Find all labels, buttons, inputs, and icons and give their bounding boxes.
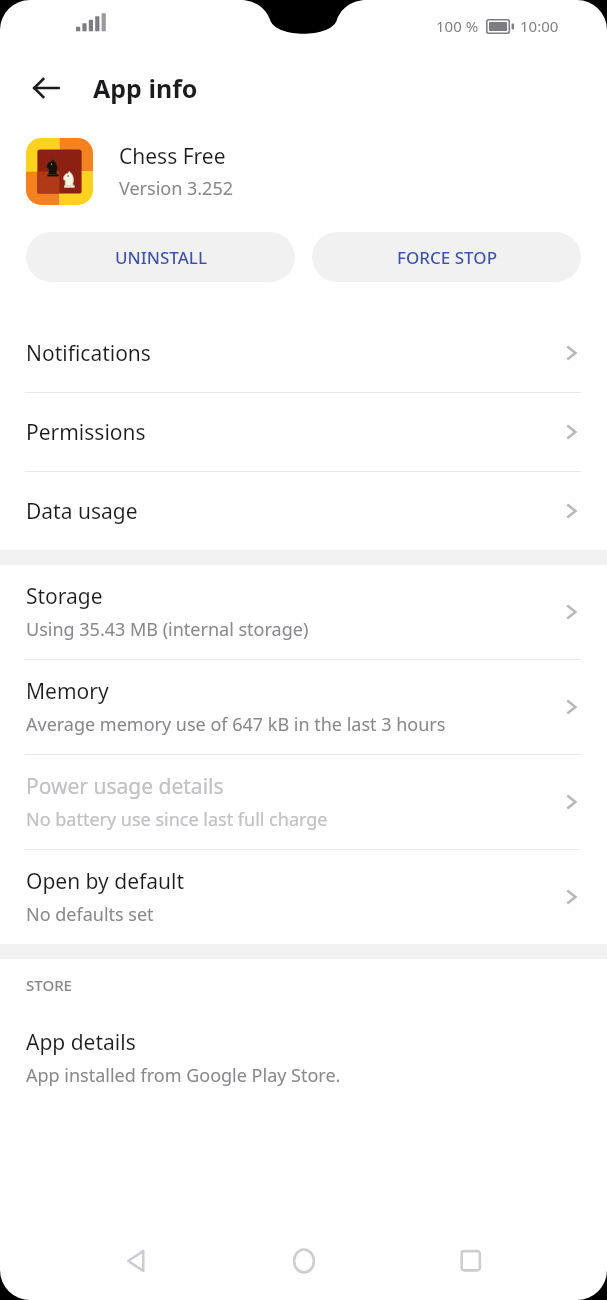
button[interactable]: App details [0, 1011, 607, 1105]
button[interactable]: Open by default [0, 850, 607, 944]
button[interactable]: Back [106, 1230, 168, 1292]
button[interactable]: FORCE STOP [312, 232, 581, 282]
button[interactable]: Permissions [0, 393, 607, 471]
button[interactable]: Storage [0, 565, 607, 659]
staticText: Notifications [26, 339, 151, 368]
staticText: Memory [26, 677, 109, 706]
staticText: 100 % [436, 16, 479, 36]
button[interactable]: Notifications [0, 314, 607, 392]
staticText: Storage [26, 582, 103, 611]
staticText: App details [26, 1028, 136, 1057]
button[interactable]: Data usage [0, 472, 607, 550]
staticText: Chess Free [119, 142, 226, 171]
staticText: STORE [26, 975, 72, 995]
button[interactable]: Memory [0, 660, 607, 754]
staticText: FORCE STOP [397, 246, 497, 269]
staticText: 10:00 [520, 16, 559, 36]
button[interactable]: Home [273, 1230, 335, 1292]
button[interactable]: Back [22, 64, 70, 112]
staticText: Data usage [26, 497, 138, 526]
staticText: Version 3.252 [119, 176, 233, 201]
staticText: UNINSTALL [115, 246, 207, 269]
button[interactable]: UNINSTALL [26, 232, 295, 282]
staticText: Permissions [26, 418, 146, 447]
staticText: No defaults set [26, 902, 154, 927]
staticText: App installed from Google Play Store. [26, 1063, 341, 1088]
button[interactable]: Recents [440, 1230, 502, 1292]
staticText: Using 35.43 MB (internal storage) [26, 617, 309, 642]
button[interactable]: Power usage details [0, 755, 607, 849]
staticText: Open by default [26, 867, 185, 896]
staticText: App info [93, 71, 198, 105]
staticText: Average memory use of 647 kB in the last… [26, 712, 446, 737]
staticText: Power usage details [26, 772, 224, 801]
staticText: No battery use since last full charge [26, 807, 328, 832]
